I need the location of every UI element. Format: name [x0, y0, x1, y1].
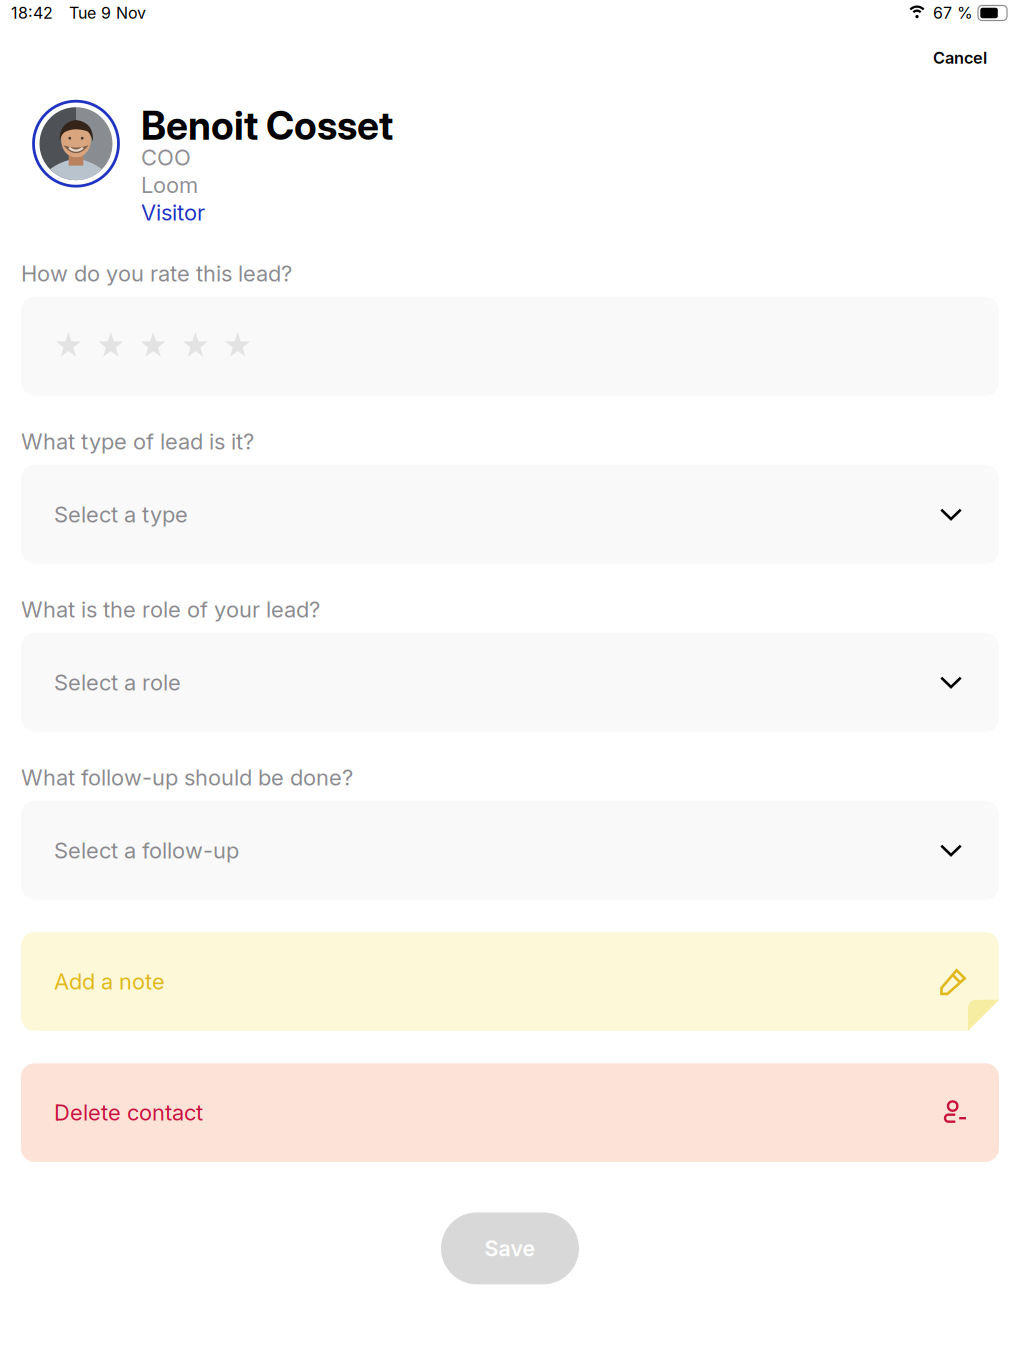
staticText: What is the role of your lead?: [21, 596, 320, 623]
button[interactable]: Add a note: [21, 932, 999, 1031]
button[interactable]: Select a role: [21, 633, 999, 732]
button[interactable]: Select a follow-up: [21, 801, 999, 900]
button[interactable]: Delete contact: [21, 1063, 999, 1162]
staticText: What type of lead is it?: [21, 428, 254, 455]
staticText: How do you rate this lead?: [21, 260, 292, 287]
staticText: Benoit Cosset: [141, 102, 393, 149]
staticText: Save: [484, 1235, 535, 1261]
staticText: Select a type: [54, 501, 188, 528]
staticText: Loom: [141, 172, 198, 198]
staticText: Select a role: [54, 669, 181, 696]
staticText: What follow-up should be done?: [21, 764, 353, 791]
staticText: Visitor: [141, 199, 205, 226]
staticText: 67 %: [933, 3, 973, 23]
button[interactable]: Cancel: [923, 40, 997, 76]
staticText: Add a note: [54, 968, 165, 995]
staticText: Cancel: [933, 48, 987, 68]
staticText: COO: [141, 144, 191, 171]
button[interactable]: Select a type: [21, 465, 999, 564]
button[interactable]: Save: [441, 1212, 579, 1284]
staticText: Delete contact: [54, 1099, 203, 1126]
staticText: Tue 9 Nov: [69, 3, 146, 23]
staticText: 18:42: [11, 3, 53, 23]
staticText: Select a follow-up: [54, 837, 239, 864]
